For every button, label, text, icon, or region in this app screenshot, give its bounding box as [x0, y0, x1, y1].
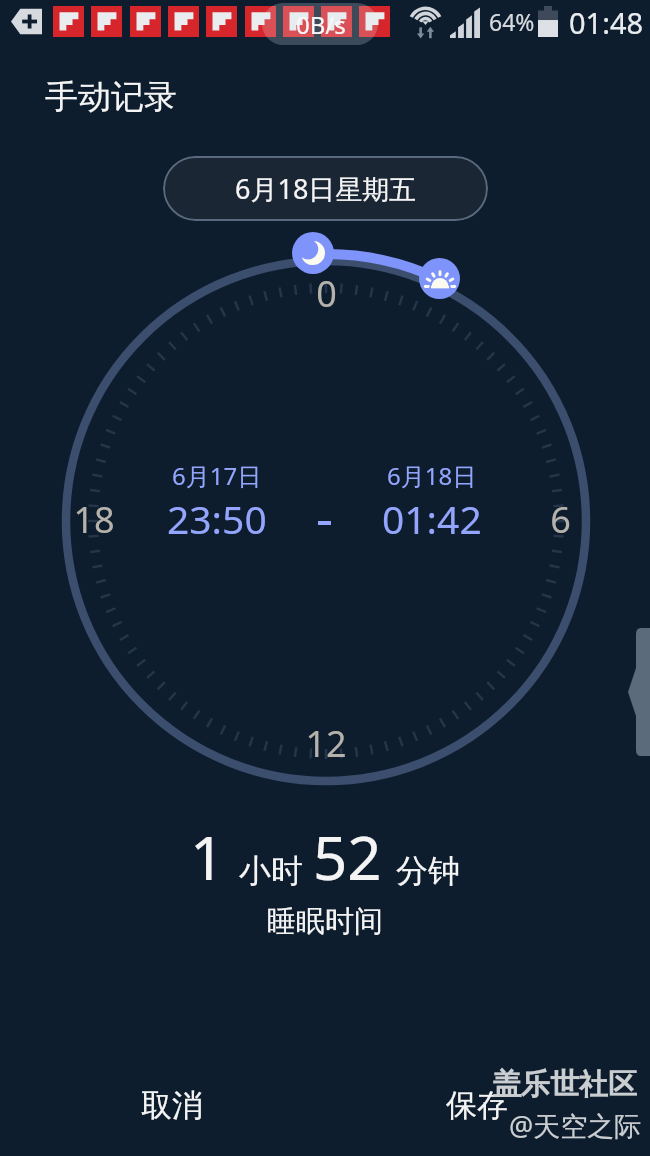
- button[interactable]: 取消: [62, 1062, 282, 1148]
- button[interactable]: Wake up time: [419, 258, 460, 299]
- staticText: 分钟: [396, 851, 460, 891]
- staticText: 18: [73, 495, 115, 544]
- staticText: 小时: [239, 851, 303, 891]
- staticText: 睡眠时间: [267, 903, 383, 940]
- staticText: 52: [313, 816, 382, 898]
- button[interactable]: 6月18日星期五: [163, 156, 488, 221]
- staticText: 23:50: [167, 492, 267, 545]
- staticText: 12: [305, 719, 347, 768]
- staticText: 0: [316, 269, 337, 318]
- staticText: 盖乐世社区: [492, 1066, 637, 1103]
- staticText: 0B/s: [296, 8, 346, 41]
- staticText: 6: [550, 495, 571, 544]
- staticText: 01:48: [569, 3, 644, 42]
- staticText: 01:42: [382, 492, 482, 545]
- staticText: @天空之际: [509, 1107, 642, 1144]
- button[interactable]: 保存: [367, 1062, 587, 1148]
- staticText: 1: [190, 816, 225, 898]
- button[interactable]: Open edge panel: [628, 628, 650, 756]
- button[interactable]: Bedtime: [292, 232, 334, 274]
- staticText: 6月18日: [387, 459, 477, 492]
- staticText: 手动记录: [45, 76, 177, 118]
- staticText: 64%: [489, 6, 535, 37]
- staticText: 取消: [141, 1086, 203, 1125]
- staticText: 6月17日: [172, 459, 262, 492]
- staticText: 6月18日星期五: [235, 170, 417, 207]
- staticText: 保存: [446, 1086, 508, 1125]
